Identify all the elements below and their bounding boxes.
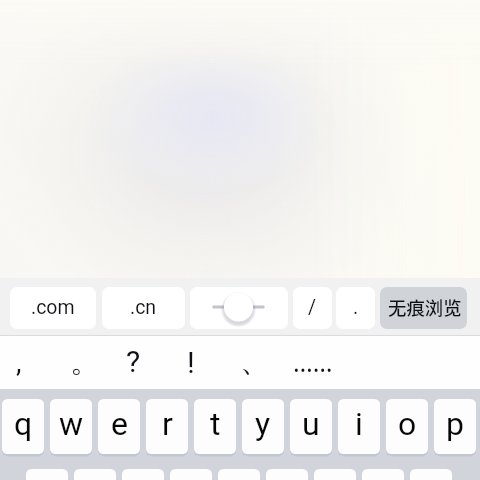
button[interactable]: .com — [10, 287, 96, 329]
button[interactable]: ? — [105, 336, 161, 389]
button[interactable]: d — [122, 469, 164, 480]
button[interactable]: t — [194, 399, 236, 454]
button[interactable]: g — [218, 469, 260, 480]
button[interactable]: k — [362, 469, 404, 480]
button[interactable]: i — [338, 399, 380, 454]
button[interactable]: . — [336, 287, 375, 329]
staticText: . — [353, 296, 359, 319]
staticText: 。 — [70, 343, 100, 381]
staticText: e — [111, 405, 128, 443]
staticText: ! — [187, 345, 195, 380]
staticText: o — [398, 405, 417, 443]
button[interactable]: …… — [285, 336, 341, 389]
staticText: 无痕浏览 — [388, 294, 462, 321]
staticText: .com — [31, 296, 75, 319]
staticText: y — [255, 405, 271, 443]
button[interactable]: Dash — [190, 287, 288, 329]
button[interactable]: q — [2, 399, 44, 454]
button[interactable]: o — [386, 399, 428, 454]
staticText: q — [14, 405, 33, 443]
button[interactable]: p — [434, 399, 476, 454]
staticText: / — [308, 296, 317, 319]
button[interactable]: 。 — [57, 336, 113, 389]
button[interactable]: , — [0, 336, 47, 389]
staticText: .cn — [130, 296, 157, 319]
staticText: , — [16, 346, 22, 379]
button[interactable]: l — [410, 469, 452, 480]
staticText: w — [59, 405, 84, 443]
button[interactable]: f — [170, 469, 212, 480]
staticText: p — [446, 405, 464, 443]
button[interactable]: / — [293, 287, 332, 329]
button[interactable]: w — [50, 399, 92, 454]
button[interactable]: h — [266, 469, 308, 480]
button[interactable]: j — [314, 469, 356, 480]
staticText: 、 — [240, 342, 270, 380]
button[interactable]: e — [98, 399, 140, 454]
button[interactable]: 、 — [227, 336, 283, 389]
button[interactable]: y — [242, 399, 284, 454]
staticText: t — [210, 405, 221, 443]
button[interactable]: s — [74, 469, 116, 480]
staticText: ? — [126, 344, 141, 379]
button[interactable]: u — [290, 399, 332, 454]
staticText: u — [302, 405, 320, 443]
staticText: i — [355, 405, 363, 443]
button[interactable]: ! — [163, 336, 219, 389]
staticText: r — [162, 405, 173, 443]
button[interactable]: r — [146, 399, 188, 454]
staticText: …… — [293, 345, 333, 379]
button[interactable]: a — [26, 469, 68, 480]
button[interactable]: .cn — [102, 287, 185, 329]
button[interactable]: 无痕浏览 — [380, 287, 467, 329]
